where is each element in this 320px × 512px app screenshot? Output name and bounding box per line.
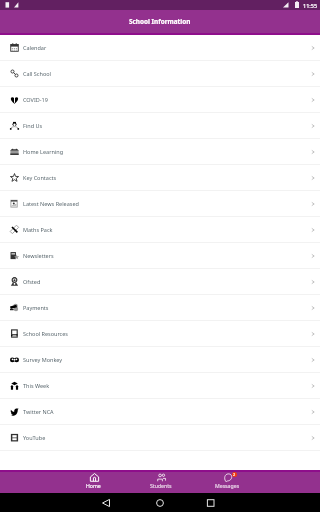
button[interactable]: Call School (0, 61, 320, 87)
button[interactable]: Newsletters (0, 243, 320, 269)
staticText: Home (86, 482, 101, 489)
button[interactable]: Ofsted (0, 269, 320, 295)
staticText: Survey Monkey (23, 356, 63, 363)
staticText: Ofsted (23, 278, 41, 285)
staticText: This Week (23, 382, 50, 389)
button[interactable]: 2 (194, 472, 261, 493)
button[interactable]: Survey Monkey (0, 347, 320, 373)
staticText: Newsletters (23, 252, 54, 259)
button[interactable]: Payments (0, 295, 320, 321)
staticText: Messages (215, 482, 240, 489)
staticText: 11:55 (303, 2, 318, 9)
staticText: YouTube (23, 434, 46, 441)
button[interactable]: Twitter NCA (0, 399, 320, 425)
staticText: Payments (23, 304, 49, 311)
staticText: Key Contacts (23, 174, 57, 181)
button[interactable]: Students (127, 472, 194, 493)
staticText: Twitter NCA (23, 408, 54, 415)
staticText: School Information (129, 17, 191, 26)
button[interactable]: This Week (0, 373, 320, 399)
button[interactable]: School Resources (0, 321, 320, 347)
staticText: Find Us (23, 122, 43, 129)
button[interactable]: Calendar (0, 35, 320, 61)
button[interactable]: Home (60, 472, 127, 493)
button[interactable]: Maths Pack (0, 217, 320, 243)
staticText: 2 (233, 472, 236, 477)
button[interactable]: Key Contacts (0, 165, 320, 191)
button[interactable]: YouTube (0, 425, 320, 451)
staticText: Latest News Released (23, 200, 79, 207)
staticText: Maths Pack (23, 226, 53, 233)
button[interactable]: COVID-19 (0, 87, 320, 113)
staticText: COVID-19 (23, 96, 48, 103)
staticText: Call School (23, 70, 51, 77)
staticText: Students (150, 482, 172, 489)
button[interactable]: Home Learning (0, 139, 320, 165)
button[interactable]: Latest News Released (0, 191, 320, 217)
staticText: Home Learning (23, 148, 64, 155)
staticText: Calendar (23, 44, 47, 51)
staticText: School Resources (23, 330, 68, 337)
button[interactable]: Find Us (0, 113, 320, 139)
